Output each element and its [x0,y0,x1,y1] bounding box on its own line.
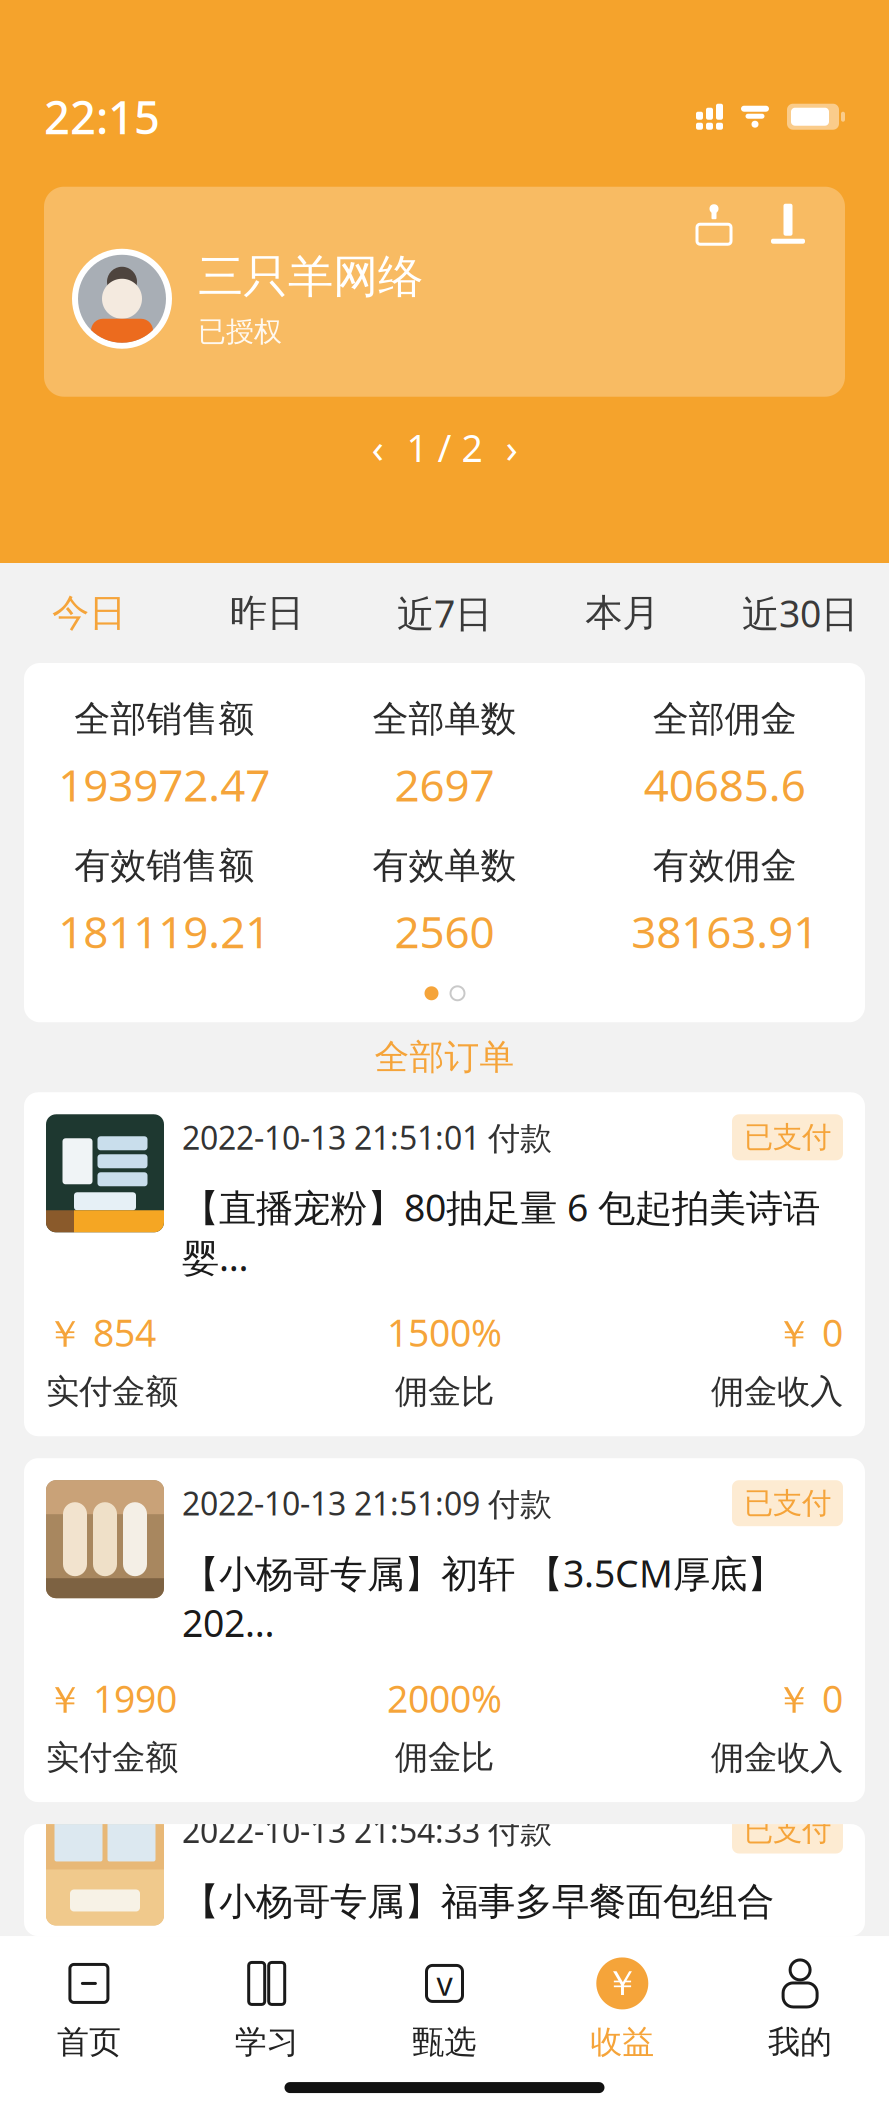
staticText: 我的 [768,2022,832,2062]
staticText: › [505,421,517,474]
staticText: 1 / 2 [406,423,482,472]
staticText: 昨日 [230,590,304,636]
staticText: 三只羊网络 [198,249,423,304]
staticText: 已授权 [198,314,282,349]
staticText: ￥ 1990 [46,1673,177,1723]
button[interactable]: 编辑 [765,201,811,247]
staticText: 全部佣金 [653,697,797,741]
button[interactable]: 近7日 [356,563,533,663]
staticText: 已支付 [744,1119,831,1155]
staticText: 首页 [57,2022,121,2062]
button[interactable]: 昨日 [178,563,356,663]
button[interactable]: 首页 [0,1954,178,2064]
staticText: 2000% [387,1673,502,1723]
staticText: 佣金收入 [711,1737,843,1778]
staticText: 2560 [394,902,494,960]
staticText: 佣金比 [395,1737,494,1778]
staticText: 全部销售额 [74,697,254,741]
staticText: 已支付 [744,1812,831,1848]
button[interactable]: 上一页 [362,427,392,467]
staticText: 收益 [590,2022,654,2062]
staticText: 今日 [52,590,126,636]
staticText: ￥ [605,1962,640,2005]
staticText: 【小杨哥专属】初轩 【3.5CM厚底】202… [182,1548,784,1647]
staticText: 40685.6 [644,755,806,814]
staticText: 有效销售额 [74,844,254,888]
staticText: 38163.91 [631,902,818,960]
button[interactable]: 近30日 [711,563,889,663]
staticText: 有效佣金 [653,844,797,888]
button[interactable]: 今日 [0,563,178,663]
staticText: 有效单数 [372,844,516,888]
staticText: 【直播宠粉】80抽足量 6 包起拍美诗语婴… [182,1182,820,1281]
staticText: 181119.21 [58,902,270,960]
staticText: 2022-10-13 21:51:09 付款 [182,1482,552,1524]
button[interactable]: v [356,1954,533,2064]
staticText: ￥ 0 [775,1307,843,1357]
button[interactable]: ￥ [533,1954,711,2064]
staticText: 已支付 [744,1485,831,1521]
button[interactable]: 我的 [711,1954,889,2064]
button[interactable]: 学习 [178,1954,356,2064]
staticText: ￥ 0 [775,1673,843,1723]
staticText: 全部单数 [372,697,516,741]
button[interactable]: 全部订单 [0,1022,889,1092]
staticText: ‹ [371,421,383,474]
staticText: 佣金收入 [711,1371,843,1412]
button[interactable]: 本月 [533,563,711,663]
button[interactable]: 2022-10-13 21:54:33 付款 [24,1824,865,1936]
staticText: v [436,1962,452,2005]
staticText: 2022-10-13 21:54:33 付款 [182,1809,552,1852]
button[interactable]: 2022-10-13 21:51:09 付款 [24,1458,865,1802]
staticText: 近30日 [742,588,858,638]
staticText: 实付金额 [46,1371,178,1412]
button[interactable]: 导出 [691,201,737,247]
staticText: 【小杨哥专属】福事多早餐面包组合 400… [182,1875,774,1975]
staticText: 甄选 [412,2022,476,2062]
staticText: 实付金额 [46,1737,178,1778]
staticText: 全部订单 [374,1036,514,1079]
staticText: ￥ 854 [46,1307,156,1357]
staticText: 193972.47 [58,755,270,814]
staticText: 佣金比 [395,1371,494,1412]
staticText: 2022-10-13 21:51:01 付款 [182,1116,552,1159]
staticText: 学习 [235,2022,299,2062]
staticText: 2697 [394,755,494,814]
staticText: 近7日 [397,588,492,638]
staticText: 本月 [585,590,659,636]
button[interactable]: 下一页 [496,427,526,467]
staticText: 1500% [387,1308,502,1357]
staticText: 22:15 [44,87,160,147]
button[interactable]: 2022-10-13 21:51:01 付款 [24,1092,865,1436]
